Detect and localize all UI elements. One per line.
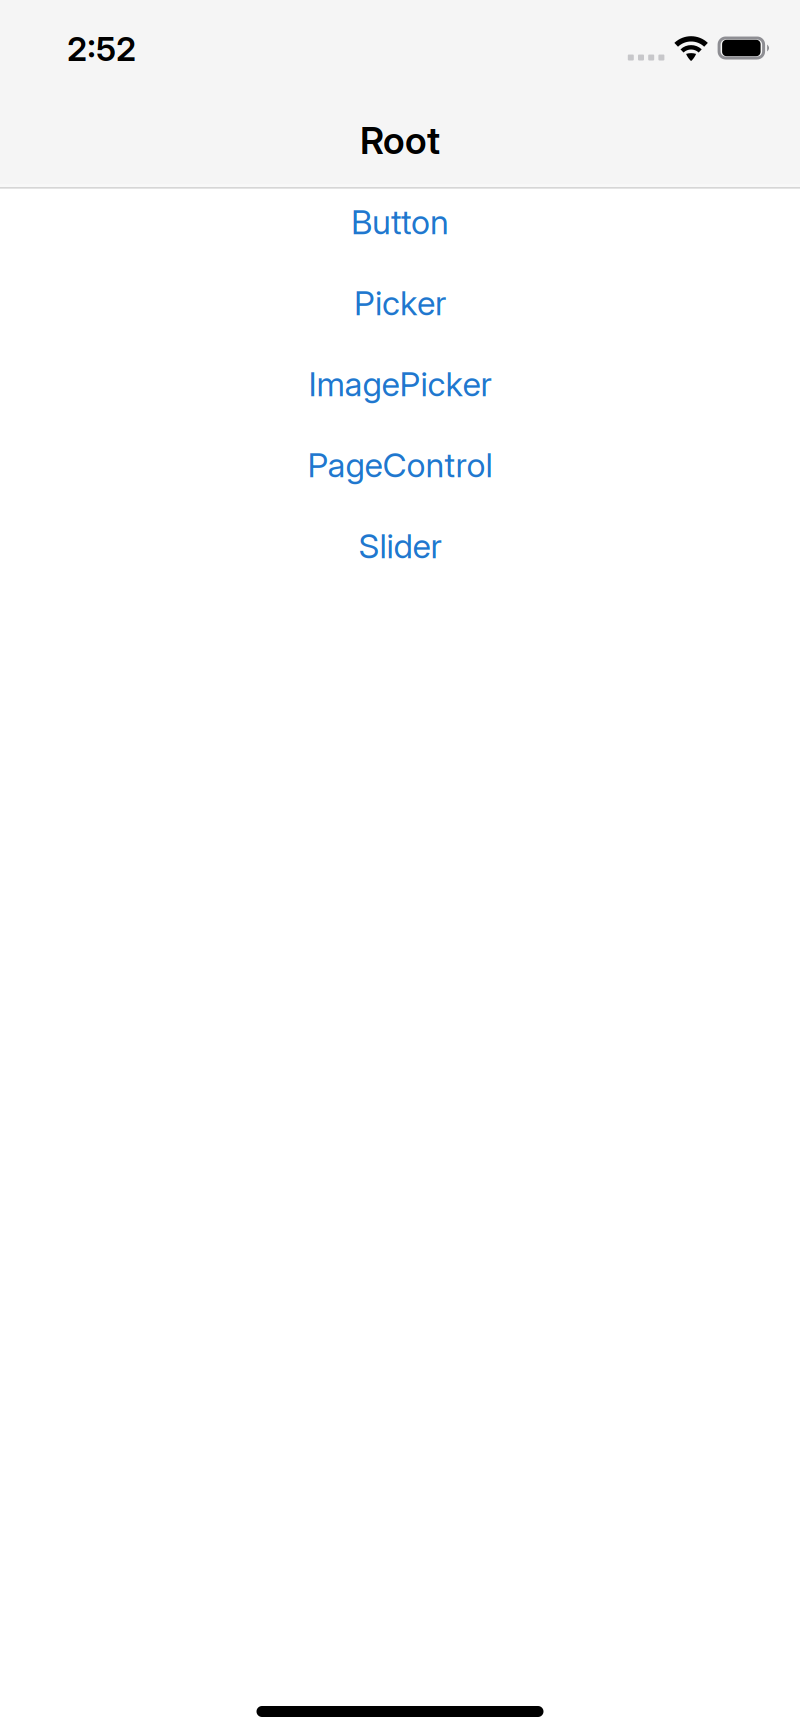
staticText: ImagePicker [308,364,491,404]
button[interactable]: ImagePicker [0,344,800,425]
staticText: Root [360,118,440,163]
button[interactable]: PageControl [0,425,800,506]
staticText: PageControl [307,445,492,485]
button[interactable]: Button [0,182,800,263]
button[interactable]: Picker [0,263,800,344]
staticText: Picker [354,283,446,323]
staticText: Slider [358,526,441,566]
staticText: 2:52 [67,29,136,69]
button[interactable]: Slider [0,506,800,587]
staticText: Button [351,202,449,242]
